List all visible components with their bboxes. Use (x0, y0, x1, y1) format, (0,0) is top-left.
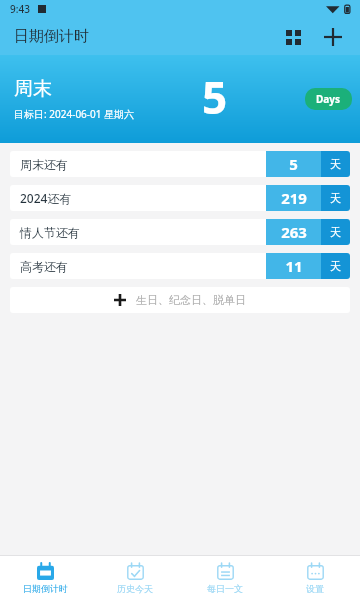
button[interactable]: Add countdown (316, 20, 350, 54)
button[interactable]: 周末 (0, 55, 360, 143)
staticText: 每日一文 (207, 583, 243, 594)
staticText: 情人节还有 (20, 225, 266, 240)
button[interactable]: 生日、纪念日、脱单日 (10, 287, 350, 313)
staticText: 天 (330, 157, 341, 171)
staticText: 天 (330, 259, 341, 273)
button[interactable]: 历史今天 (90, 556, 180, 600)
button[interactable]: Grid view (276, 20, 310, 54)
button[interactable]: 设置 (270, 556, 360, 600)
button[interactable]: 情人节还有 (10, 219, 350, 245)
staticText: 日期倒计时 (14, 27, 89, 46)
staticText: 5 (289, 154, 298, 174)
button[interactable]: 每日一文 (180, 556, 270, 600)
button[interactable]: 周末还有 (10, 151, 350, 177)
button[interactable]: 日期倒计时 (0, 556, 90, 600)
button[interactable]: 高考还有 (10, 253, 350, 279)
button[interactable]: 2024还有 (10, 185, 350, 211)
staticText: 周末还有 (20, 157, 266, 172)
staticText: 周末 (14, 77, 52, 101)
staticText: 天 (330, 225, 341, 239)
staticText: 生日、纪念日、脱单日 (136, 293, 246, 307)
staticText: 11 (285, 256, 303, 276)
staticText: 9:43 (10, 2, 30, 16)
staticText: 219 (281, 188, 307, 208)
staticText: 目标日: 2024-06-01 星期六 (14, 107, 135, 121)
staticText: 高考还有 (20, 259, 266, 274)
staticText: 历史今天 (117, 583, 153, 594)
staticText: 设置 (306, 583, 324, 594)
staticText: 日期倒计时 (23, 583, 68, 594)
staticText: 2024还有 (20, 190, 266, 206)
staticText: 天 (330, 191, 341, 205)
staticText: 263 (281, 222, 307, 242)
staticText: Days (316, 92, 341, 106)
staticText: 5 (202, 67, 228, 127)
button[interactable]: Days (305, 88, 352, 110)
